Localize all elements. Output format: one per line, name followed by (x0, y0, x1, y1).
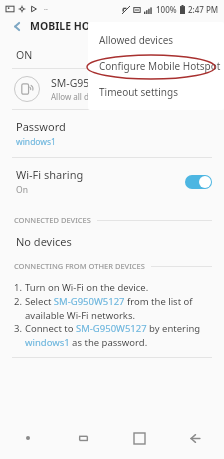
staticText: ON (16, 48, 33, 62)
button[interactable]: SM-G950W5127 (0, 69, 224, 109)
button[interactable]: No devices (0, 225, 224, 257)
staticText: CONNECTED DEVICES (14, 215, 91, 225)
staticText: Allowed devices (99, 33, 174, 47)
staticText: Turn on Wi-Fi on the device. (25, 281, 149, 294)
staticText: MOBILE HOTSPOT (30, 19, 123, 33)
staticText: Connect to SM-G950W5127 by entering wind… (25, 322, 214, 348)
button[interactable]: ON (0, 42, 224, 68)
staticText: 1. (14, 281, 25, 294)
staticText: Allow all devices to connect (51, 91, 154, 102)
staticText: Select SM-G950W5127 from the list of ava… (25, 295, 214, 321)
button[interactable]: Configure Mobile Hotspot (88, 53, 224, 79)
staticText: Configure Mobile Hotspot (99, 59, 221, 73)
staticText: CONNECTING FROM OTHER DEVICES (14, 261, 145, 271)
button[interactable]: Home (126, 425, 152, 451)
staticText: windows1 (16, 136, 56, 148)
staticText: 2:47 PM (188, 4, 219, 15)
button[interactable]: Password (0, 110, 224, 157)
staticText: On (16, 184, 28, 196)
staticText: ·· (44, 5, 48, 13)
staticText: Wi-Fi sharing (16, 167, 84, 182)
staticText: Timeout settings (99, 85, 178, 99)
staticText: SM-G950W5127 (51, 76, 130, 90)
staticText: 100% (156, 4, 177, 15)
button[interactable]: Allowed devices (88, 27, 224, 53)
button[interactable]: Wi-Fi sharing (0, 158, 224, 205)
staticText: No devices (16, 234, 72, 249)
staticText: 2. (14, 295, 25, 308)
button[interactable]: Timeout settings (88, 79, 224, 105)
button[interactable]: Menu (16, 426, 40, 450)
button[interactable]: Navigate up (9, 18, 25, 34)
button[interactable]: Recent apps (70, 425, 96, 451)
staticText: 3. (14, 322, 25, 335)
staticText: Password (16, 119, 66, 134)
button[interactable]: Back (182, 425, 208, 451)
